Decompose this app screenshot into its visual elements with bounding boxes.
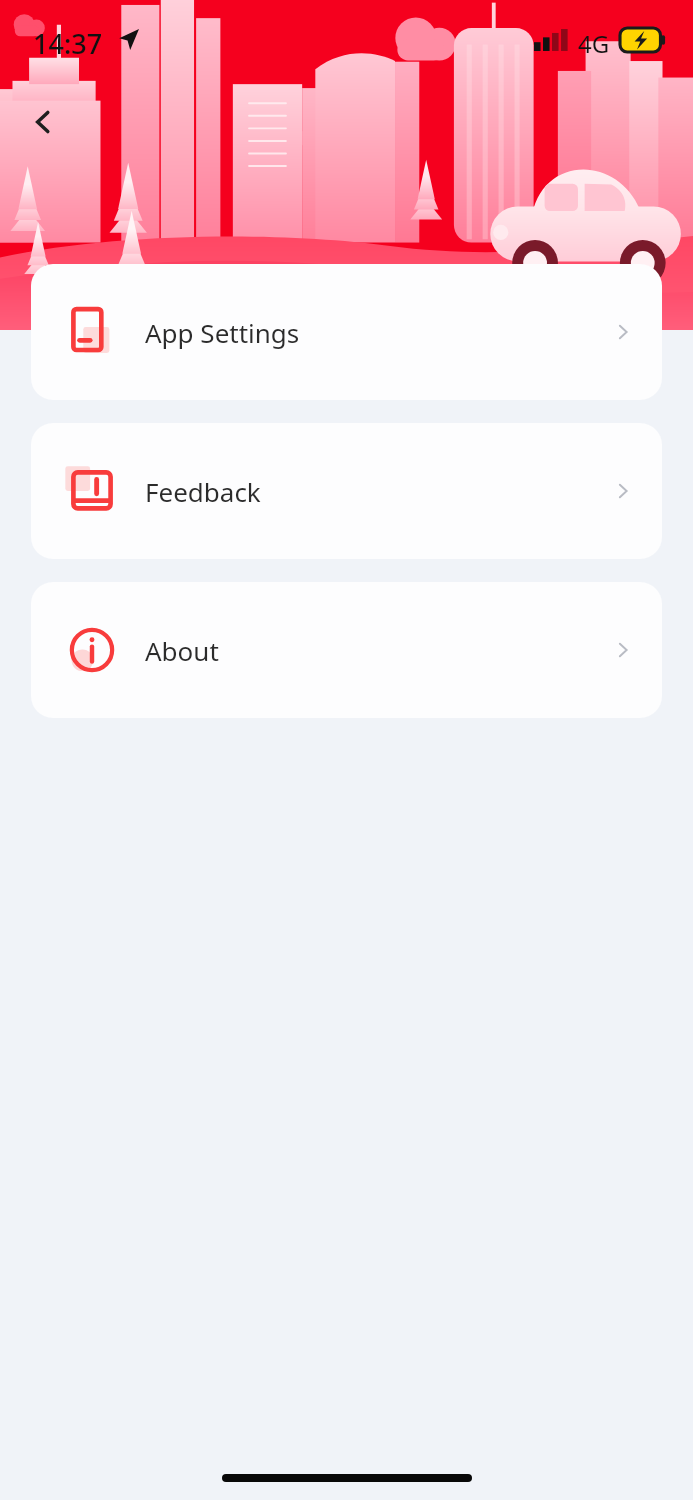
button[interactable]: Feedback (31, 423, 662, 559)
button[interactable]: About (31, 582, 662, 718)
staticText: 14:37 (33, 25, 103, 62)
staticText: App Settings (145, 315, 610, 350)
staticText: Feedback (145, 474, 610, 509)
staticText: 4G (578, 27, 610, 60)
button[interactable]: Back (14, 93, 72, 151)
staticText: About (145, 633, 610, 668)
button[interactable]: App Settings (31, 264, 662, 400)
